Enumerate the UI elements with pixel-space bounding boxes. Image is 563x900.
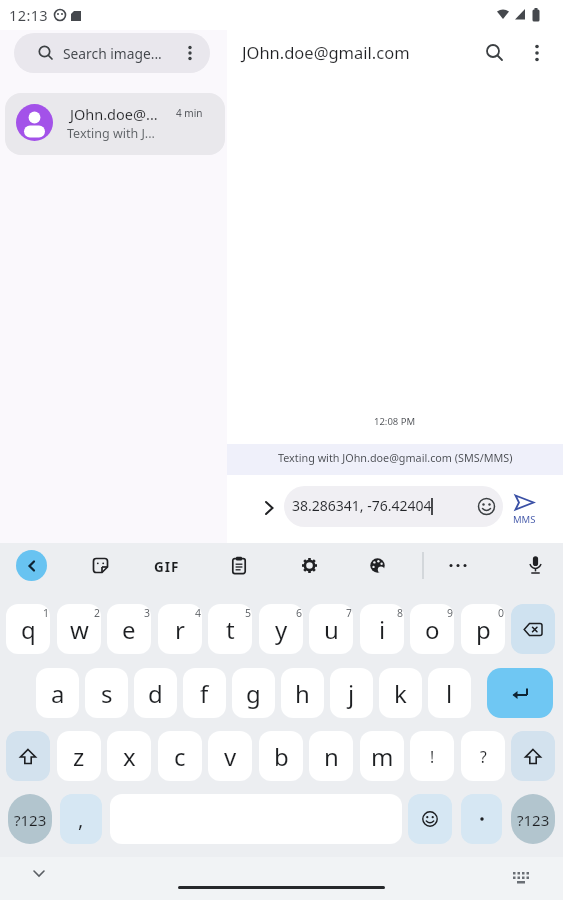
- button[interactable]: JOhn.doe@...: [5, 93, 225, 155]
- button[interactable]: [524, 40, 550, 66]
- button[interactable]: d: [134, 668, 177, 718]
- staticText: 4: [195, 606, 202, 620]
- button[interactable]: y: [259, 604, 303, 654]
- staticText: 5: [245, 606, 252, 620]
- button[interactable]: [448, 556, 468, 575]
- button[interactable]: ?123: [511, 794, 555, 844]
- staticText: Texting with J...: [67, 125, 155, 142]
- button[interactable]: [487, 668, 553, 718]
- staticText: GIF: [154, 558, 180, 576]
- staticText: c: [174, 740, 186, 773]
- staticText: JOhn.doe@...: [70, 104, 158, 124]
- button[interactable]: [511, 731, 555, 781]
- button[interactable]: [16, 550, 47, 581]
- staticText: k: [394, 677, 407, 710]
- staticText: v: [224, 740, 237, 773]
- button[interactable]: ?123: [8, 794, 52, 844]
- staticText: m: [371, 740, 394, 773]
- button[interactable]: a: [36, 668, 79, 718]
- staticText: n: [324, 740, 339, 773]
- button[interactable]: ?: [461, 731, 505, 781]
- staticText: d: [148, 677, 163, 710]
- button[interactable]: i: [360, 604, 404, 654]
- button[interactable]: [408, 794, 452, 844]
- button[interactable]: [482, 40, 508, 66]
- button[interactable]: [92, 557, 109, 574]
- button[interactable]: h: [281, 668, 324, 718]
- staticText: g: [246, 677, 261, 710]
- staticText: ?123: [14, 810, 47, 830]
- staticText: o: [425, 613, 440, 646]
- staticText: q: [21, 613, 36, 646]
- button[interactable]: [461, 794, 502, 844]
- button[interactable]: p: [461, 604, 505, 654]
- button[interactable]: o: [410, 604, 454, 654]
- staticText: ?123: [517, 810, 550, 830]
- button[interactable]: [6, 731, 50, 781]
- button[interactable]: b: [259, 731, 303, 781]
- staticText: p: [476, 613, 491, 646]
- button[interactable]: c: [158, 731, 202, 781]
- staticText: 6: [296, 606, 303, 620]
- staticText: JOhn.doe@gmail.com: [242, 41, 410, 63]
- button[interactable]: v: [208, 731, 252, 781]
- staticText: b: [274, 740, 289, 773]
- button[interactable]: [511, 870, 531, 885]
- staticText: s: [101, 677, 113, 710]
- button[interactable]: q: [6, 604, 50, 654]
- button[interactable]: e: [107, 604, 151, 654]
- staticText: h: [295, 677, 310, 710]
- staticText: 0: [498, 606, 505, 620]
- button[interactable]: Search image...: [14, 33, 210, 73]
- button[interactable]: f: [183, 668, 226, 718]
- staticText: 8: [397, 606, 404, 620]
- button[interactable]: g: [232, 668, 275, 718]
- staticText: Search image...: [63, 44, 162, 63]
- button[interactable]: t: [208, 604, 252, 654]
- staticText: y: [275, 613, 288, 646]
- button[interactable]: [301, 557, 318, 574]
- button[interactable]: u: [309, 604, 353, 654]
- button[interactable]: m: [360, 731, 404, 781]
- staticText: 9: [447, 606, 454, 620]
- staticText: 1: [43, 606, 50, 620]
- staticText: j: [348, 677, 355, 710]
- staticText: MMS: [513, 513, 536, 526]
- button[interactable]: x: [107, 731, 151, 781]
- staticText: e: [122, 613, 136, 646]
- button[interactable]: r: [158, 604, 202, 654]
- button[interactable]: l: [428, 668, 471, 718]
- button[interactable]: 38.286341, -76.42404: [284, 486, 503, 527]
- button[interactable]: [260, 499, 278, 517]
- staticText: a: [51, 677, 65, 710]
- staticText: ?: [480, 746, 487, 767]
- button[interactable]: MMS: [511, 492, 543, 526]
- button[interactable]: z: [57, 731, 101, 781]
- button[interactable]: !: [410, 731, 454, 781]
- button[interactable]: w: [57, 604, 101, 654]
- staticText: f: [200, 677, 209, 710]
- button[interactable]: [511, 604, 555, 654]
- staticText: 7: [346, 606, 353, 620]
- staticText: w: [70, 613, 89, 646]
- button[interactable]: [30, 866, 48, 880]
- button[interactable]: [527, 555, 544, 576]
- staticText: 2: [94, 606, 101, 620]
- button[interactable]: ,: [60, 794, 102, 844]
- button[interactable]: [231, 556, 247, 575]
- button[interactable]: k: [379, 668, 422, 718]
- staticText: z: [73, 740, 85, 773]
- button[interactable]: s: [85, 668, 128, 718]
- button[interactable]: j: [330, 668, 373, 718]
- staticText: 3: [144, 606, 151, 620]
- staticText: !: [430, 746, 435, 767]
- staticText: 4 min: [176, 106, 203, 120]
- button[interactable]: [369, 557, 386, 574]
- staticText: u: [324, 613, 339, 646]
- staticText: 38.286341, -76.42404: [292, 496, 432, 515]
- staticText: 12:13: [9, 5, 49, 25]
- button[interactable]: n: [309, 731, 353, 781]
- staticText: l: [446, 677, 453, 710]
- staticText: t: [226, 613, 235, 646]
